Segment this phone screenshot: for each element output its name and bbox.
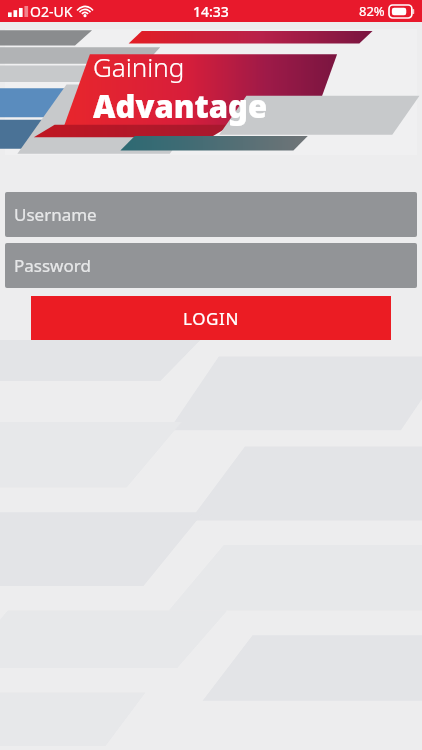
button[interactable]: Username [5,192,417,237]
staticText: Password [14,254,91,277]
button[interactable]: LOGIN [31,296,391,340]
staticText: LOGIN [183,307,239,330]
staticText: 14:33 [193,2,229,21]
staticText: Username [14,203,97,226]
staticText: 82% [359,2,385,20]
staticText: O2-UK [30,2,73,21]
staticText: Advantage [93,85,268,127]
button[interactable]: Password [5,243,417,288]
staticText: Gaining [93,49,185,84]
